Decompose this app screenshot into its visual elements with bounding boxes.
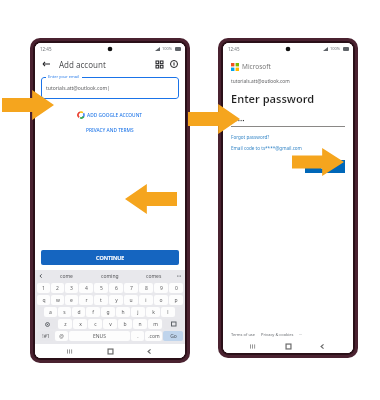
button[interactable]: a bbox=[44, 307, 57, 317]
button[interactable]: d bbox=[72, 307, 85, 317]
button[interactable]: r bbox=[79, 295, 93, 305]
button[interactable]: 3 bbox=[65, 283, 78, 293]
staticText: z bbox=[64, 321, 67, 328]
button[interactable]: 8 bbox=[139, 283, 153, 293]
button[interactable]: y bbox=[109, 295, 123, 305]
button[interactable]: k bbox=[146, 307, 160, 317]
staticText: comes bbox=[146, 273, 162, 280]
button[interactable]: 0 bbox=[169, 283, 183, 293]
button[interactable]: @ bbox=[55, 331, 68, 341]
staticText: 0 bbox=[175, 285, 178, 292]
button[interactable]: l bbox=[161, 307, 175, 317]
button[interactable]: z bbox=[58, 319, 72, 329]
button[interactable]: p bbox=[169, 295, 183, 305]
button[interactable]: s bbox=[58, 307, 71, 317]
staticText: h bbox=[121, 309, 125, 316]
button[interactable]: More options bbox=[299, 332, 303, 337]
button[interactable]: 9 bbox=[154, 283, 168, 293]
staticText: !#1 bbox=[42, 333, 50, 340]
button[interactable]: tutorials.att@outlook.com| bbox=[41, 77, 179, 99]
staticText: .com bbox=[148, 333, 160, 340]
staticText: 12:45 bbox=[228, 46, 240, 52]
staticText: n bbox=[138, 321, 142, 328]
staticText: Sign in bbox=[317, 163, 333, 170]
button[interactable]: Privacy & cookies bbox=[261, 332, 294, 337]
button[interactable]: b bbox=[118, 319, 132, 329]
button[interactable] bbox=[176, 273, 182, 279]
button[interactable]: c bbox=[88, 319, 102, 329]
staticText: 8 bbox=[145, 285, 148, 292]
button[interactable]: CONTINUE bbox=[41, 250, 179, 265]
staticText: Enter password bbox=[231, 91, 315, 106]
staticText: 9 bbox=[160, 285, 163, 292]
staticText: Forgot password? bbox=[231, 134, 270, 140]
button[interactable]: ENUS bbox=[69, 331, 130, 341]
button[interactable]: 5 bbox=[94, 283, 108, 293]
button[interactable]: w bbox=[51, 295, 64, 305]
staticText: Go bbox=[170, 333, 177, 340]
staticText: 6 bbox=[115, 285, 118, 292]
other: Tap sign in bbox=[292, 148, 344, 176]
button[interactable]: 7 bbox=[124, 283, 138, 293]
button[interactable]: 2 bbox=[51, 283, 64, 293]
staticText: b bbox=[123, 321, 127, 328]
button[interactable]: g bbox=[101, 307, 115, 317]
staticText: c bbox=[94, 321, 97, 328]
button[interactable]: j bbox=[131, 307, 145, 317]
button[interactable]: v bbox=[103, 319, 117, 329]
staticText: . bbox=[137, 333, 139, 340]
button[interactable]: 4 bbox=[79, 283, 93, 293]
button[interactable]: •••••• bbox=[231, 114, 345, 127]
button[interactable]: come bbox=[44, 273, 88, 280]
staticText: 3 bbox=[70, 285, 73, 292]
button[interactable]: 6 bbox=[109, 283, 123, 293]
button[interactable]: f bbox=[86, 307, 100, 317]
button[interactable]: Go bbox=[163, 331, 183, 341]
staticText: ADD GOOGLE ACCOUNT bbox=[87, 112, 143, 119]
staticText: 2 bbox=[56, 285, 59, 292]
button[interactable] bbox=[37, 319, 57, 329]
staticText: tutorials.att@outlook.com bbox=[231, 78, 290, 85]
button[interactable]: !#1 bbox=[37, 331, 54, 341]
staticText: u bbox=[129, 297, 133, 304]
button[interactable]: comes bbox=[132, 273, 176, 280]
staticText: @ bbox=[59, 333, 64, 340]
staticText: Enter your email bbox=[48, 74, 80, 79]
staticText: x bbox=[79, 321, 82, 328]
button[interactable]: o bbox=[154, 295, 168, 305]
button[interactable]: e bbox=[65, 295, 78, 305]
button[interactable]: h bbox=[116, 307, 130, 317]
button[interactable]: Email code to ts****@gmail.com bbox=[231, 145, 302, 151]
button[interactable]: Sign in bbox=[305, 160, 345, 173]
button[interactable]: n bbox=[133, 319, 147, 329]
button[interactable] bbox=[38, 273, 44, 279]
button[interactable]: Back bbox=[40, 58, 52, 70]
button[interactable]: coming bbox=[88, 273, 132, 280]
staticText: PRIVACY AND TERMS bbox=[86, 127, 134, 134]
button[interactable]: Terms of use bbox=[231, 332, 256, 337]
staticText: k bbox=[152, 309, 155, 316]
button[interactable]: t bbox=[94, 295, 108, 305]
button[interactable]: . bbox=[131, 331, 144, 341]
button[interactable]: .com bbox=[145, 331, 162, 341]
button[interactable]: PRIVACY AND TERMS bbox=[35, 123, 185, 137]
button[interactable]: 1 bbox=[37, 283, 50, 293]
button[interactable]: m bbox=[148, 319, 162, 329]
button[interactable]: x bbox=[73, 319, 87, 329]
button[interactable]: q bbox=[37, 295, 50, 305]
staticText: 5 bbox=[100, 285, 103, 292]
button[interactable]: Forgot password? bbox=[231, 134, 270, 140]
button[interactable]: i bbox=[139, 295, 153, 305]
button[interactable]: u bbox=[124, 295, 138, 305]
button[interactable]: Help bbox=[168, 58, 180, 70]
button[interactable]: Scan QR code bbox=[153, 58, 165, 70]
staticText: y bbox=[115, 297, 118, 304]
button[interactable]: ADD GOOGLE ACCOUNT bbox=[35, 107, 185, 123]
staticText: ENUS bbox=[93, 333, 106, 340]
staticText: Email code to ts****@gmail.com bbox=[231, 145, 302, 151]
staticText: l bbox=[167, 309, 169, 316]
staticText: CONTINUE bbox=[96, 254, 125, 261]
staticText: Privacy & cookies bbox=[261, 332, 294, 337]
staticText: o bbox=[159, 297, 163, 304]
button[interactable] bbox=[163, 319, 183, 329]
